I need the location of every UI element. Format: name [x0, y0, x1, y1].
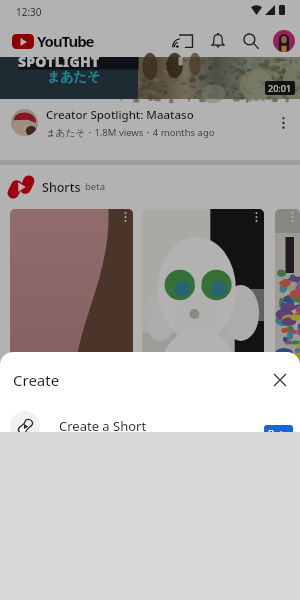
button[interactable]: More	[117, 209, 133, 225]
button[interactable]: Shorts	[0, 165, 300, 209]
button[interactable]: More	[142, 209, 264, 409]
staticText: Create a Short	[59, 417, 147, 435]
button[interactable]: More	[248, 209, 264, 225]
staticText: 20:01	[268, 82, 292, 94]
staticText: beta	[85, 180, 105, 193]
button[interactable]: Search	[234, 24, 267, 57]
staticText: YouTube	[37, 31, 94, 51]
staticText: SPOTLIGHT	[18, 52, 100, 71]
button[interactable]: Create a Short	[0, 408, 300, 452]
button[interactable]: More	[284, 209, 300, 225]
button[interactable]: Notifications	[201, 24, 234, 57]
button[interactable]: Account	[267, 24, 300, 57]
button[interactable]: Creator Spotlight: Maataso	[0, 99, 300, 160]
button[interactable]: More	[10, 209, 133, 409]
button[interactable]: More options	[270, 110, 296, 136]
staticText: Creator Spotlight: Maataso	[46, 107, 194, 123]
button[interactable]: Cast	[168, 24, 201, 57]
staticText: Beta	[268, 427, 289, 440]
button[interactable]: Close	[266, 366, 294, 394]
staticText: まあたそ・1.8M views・4 months ago	[46, 126, 215, 139]
staticText: まあたそ	[47, 68, 101, 84]
staticText: 12:30	[16, 5, 42, 19]
staticText: Create	[13, 370, 60, 390]
staticText: Shorts	[42, 179, 81, 196]
button[interactable]: YouTube	[12, 31, 94, 51]
button[interactable]: More	[275, 209, 300, 409]
